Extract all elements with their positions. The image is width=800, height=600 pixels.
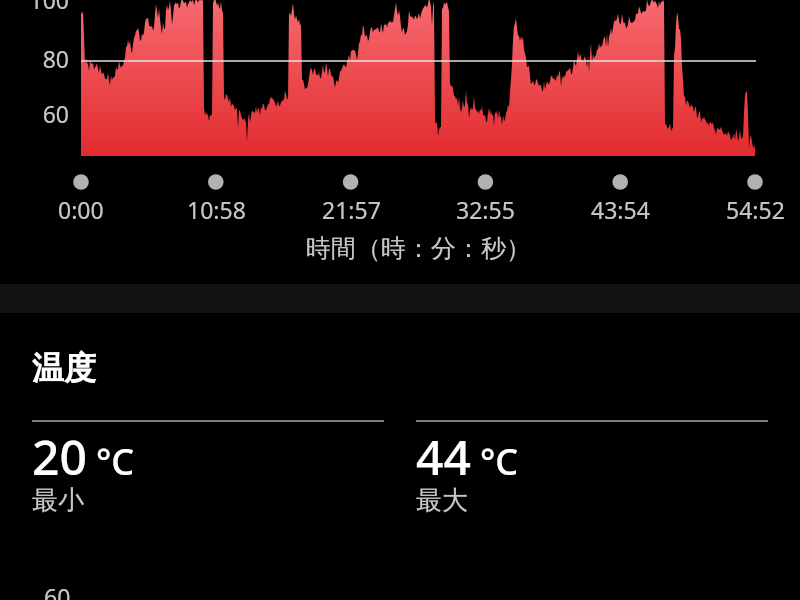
staticText: 44 bbox=[416, 424, 471, 489]
staticText: 21:57 bbox=[322, 194, 381, 225]
staticText: 最大 bbox=[416, 484, 468, 517]
button[interactable]: 44 bbox=[416, 420, 768, 520]
staticText: 温度 bbox=[32, 348, 96, 388]
staticText: 時間（時：分：秒） bbox=[306, 233, 531, 264]
staticText: 0:00 bbox=[58, 194, 104, 225]
staticText: °C bbox=[480, 437, 519, 486]
staticText: 60 bbox=[42, 98, 69, 128]
staticText: 54:52 bbox=[726, 194, 785, 225]
staticText: 10:58 bbox=[187, 194, 246, 225]
staticText: 32:55 bbox=[456, 194, 515, 225]
staticText: °C bbox=[96, 437, 135, 486]
staticText: 100 bbox=[29, 0, 69, 14]
staticText: 60 bbox=[44, 581, 71, 600]
staticText: 80 bbox=[42, 43, 69, 73]
button[interactable]: 20 bbox=[32, 420, 384, 520]
button[interactable]: 心拍数グラフ bbox=[24, 0, 776, 200]
staticText: 20 bbox=[32, 424, 87, 489]
staticText: 最小 bbox=[32, 484, 84, 517]
staticText: 43:54 bbox=[591, 194, 650, 225]
